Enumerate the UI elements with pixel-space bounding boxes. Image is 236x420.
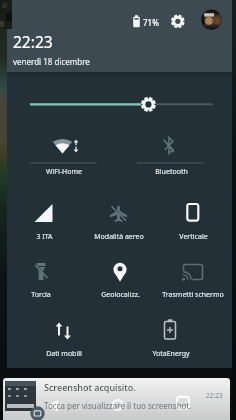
button[interactable] [128,306,212,364]
button[interactable] [22,306,106,364]
staticText: Modalità aereo [94,232,144,242]
button[interactable] [28,92,218,116]
staticText: venerdì 18 dicembre [13,56,90,67]
button[interactable] [157,248,232,304]
staticText: Bluetooth [155,167,188,177]
button[interactable] [82,190,157,246]
staticText: 71% [143,17,159,28]
button[interactable] [163,8,193,36]
button[interactable] [128,122,212,180]
button[interactable] [3,378,233,420]
staticText: 22:23 [13,31,53,52]
staticText: Screenshot acquisito. [44,381,136,393]
button[interactable] [22,122,106,180]
button[interactable] [7,248,82,304]
staticText: Tocca per visualizzare il tuo screenshot… [44,400,192,411]
button[interactable] [197,6,227,34]
staticText: YotaEnergy [152,349,190,359]
staticText: Trasmetti schermo [162,290,224,300]
staticText: Torcia [31,290,51,300]
staticText: Geolocalizz. [101,290,140,300]
button[interactable] [7,190,82,246]
staticText: Dati mobili [46,349,82,359]
staticText: 22:23 [206,391,223,400]
button[interactable] [157,190,232,246]
staticText: Verticale [179,232,208,242]
staticText: WiFi-Home [46,167,82,177]
button[interactable] [82,248,157,304]
staticText: 3 ITA [36,232,53,242]
